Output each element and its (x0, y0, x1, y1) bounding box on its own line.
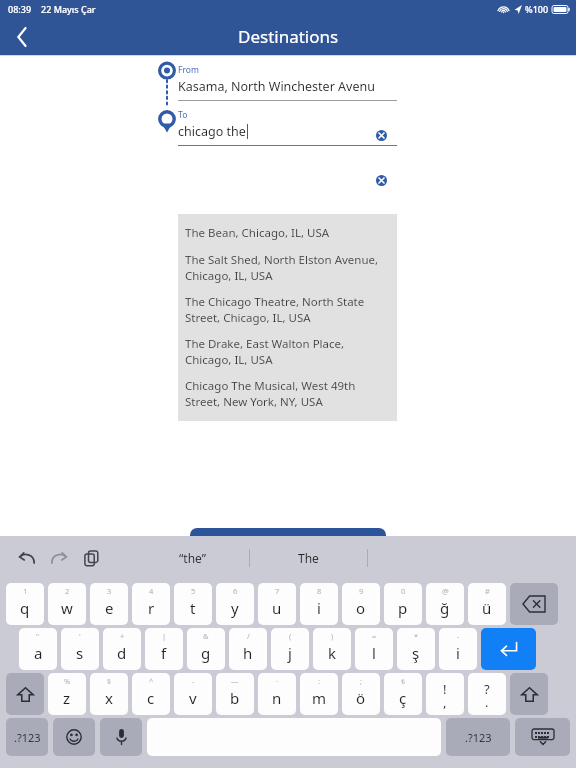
button[interactable]: ) (313, 628, 351, 670)
staticText: chicago the (178, 123, 246, 140)
staticText: 6 (233, 586, 238, 596)
button[interactable]: § (90, 673, 128, 715)
staticText: 3 (107, 586, 112, 596)
button[interactable]: ? (468, 673, 506, 715)
button[interactable]: “the” (137, 536, 249, 580)
button[interactable]: / (229, 628, 267, 670)
button[interactable]: The Bean, Chicago, IL, USA (185, 225, 390, 241)
staticText: i (317, 598, 321, 618)
button[interactable]: Emoji (53, 718, 95, 756)
button[interactable]: 4 (132, 583, 170, 625)
staticText: % (64, 676, 71, 686)
staticText: %100 (525, 3, 549, 15)
button[interactable]: ; (342, 673, 380, 715)
button[interactable]: 7 (258, 583, 296, 625)
button[interactable]: — (216, 673, 254, 715)
button[interactable]: 3 (90, 583, 128, 625)
staticText: p (398, 598, 408, 618)
button[interactable]: 2 (48, 583, 86, 625)
staticText: § (107, 676, 111, 686)
staticText: g (201, 643, 211, 663)
staticText: i (456, 643, 460, 663)
staticText: q (20, 598, 30, 618)
button[interactable]: 0 (384, 583, 422, 625)
staticText: y (231, 598, 239, 618)
staticText: 9 (359, 586, 364, 596)
staticText: - (192, 676, 195, 686)
button[interactable]: The (250, 536, 367, 580)
staticText: 08:39 (8, 3, 32, 15)
staticText: * (414, 631, 419, 641)
button[interactable]: Redo (45, 544, 73, 572)
staticText: @ (442, 586, 449, 596)
button[interactable]: | (145, 628, 183, 670)
staticText: .?123 (465, 730, 492, 745)
button[interactable]: % (48, 673, 86, 715)
staticText: ğ (440, 598, 450, 618)
staticText: - (457, 631, 460, 641)
button[interactable]: + (103, 628, 141, 670)
staticText: # (485, 586, 490, 596)
button[interactable]: 9 (342, 583, 380, 625)
staticText: To (178, 109, 188, 121)
button[interactable]: Clear from field (368, 122, 394, 148)
button[interactable]: Backspace (510, 583, 558, 625)
button[interactable]: @ (426, 583, 464, 625)
button[interactable]: # (468, 583, 506, 625)
button[interactable]: : (300, 673, 338, 715)
button[interactable]: - (439, 628, 477, 670)
button[interactable]: ! (426, 673, 464, 715)
button[interactable]: * (397, 628, 435, 670)
button[interactable]: The Chicago Theatre, North State Street,… (185, 294, 390, 325)
staticText: & (203, 631, 209, 641)
staticText: j (288, 643, 292, 663)
button[interactable]: Next (190, 528, 386, 561)
button[interactable]: Enter (481, 628, 536, 670)
staticText: m (312, 688, 327, 708)
button[interactable]: 8 (300, 583, 338, 625)
button[interactable]: ₺ (384, 673, 422, 715)
staticText: ! (443, 680, 447, 698)
button[interactable]: ^ (132, 673, 170, 715)
button[interactable]: ( (271, 628, 309, 670)
button[interactable]: Paste (77, 544, 105, 572)
button[interactable]: Undo (13, 544, 41, 572)
button[interactable]: The Salt Shed, North Elston Avenue, Chic… (185, 252, 390, 283)
button[interactable]: 1 (6, 583, 44, 625)
staticText: “the” (179, 550, 207, 566)
button[interactable]: Chicago The Musical, West 49th Street, N… (185, 378, 390, 409)
staticText: x (105, 688, 113, 708)
button[interactable]: .?123 (6, 718, 48, 756)
staticText: 0 (401, 586, 406, 596)
staticText: / (247, 631, 250, 641)
button[interactable]: Voice input (100, 718, 142, 756)
button[interactable]: 6 (216, 583, 254, 625)
button[interactable]: & (187, 628, 225, 670)
button[interactable]: Hide keyboard (515, 718, 570, 756)
button[interactable]: " (19, 628, 57, 670)
button[interactable]: - (174, 673, 212, 715)
button[interactable]: Back (0, 18, 44, 55)
staticText: o (356, 598, 366, 618)
staticText: 8 (317, 586, 322, 596)
staticText: ( (289, 631, 292, 641)
button[interactable]: .?123 (446, 718, 510, 756)
staticText: w (61, 598, 73, 618)
button[interactable]: · (258, 673, 296, 715)
button[interactable]: Clear to field (368, 167, 394, 193)
staticText: The Drake, East Walton Place, Chicago, I… (185, 336, 390, 367)
staticText: | (162, 631, 167, 641)
staticText: . (485, 693, 489, 711)
button[interactable]: 5 (174, 583, 212, 625)
staticText: a (34, 643, 43, 663)
button[interactable]: The Drake, East Walton Place, Chicago, I… (185, 336, 390, 367)
button[interactable]: Shift (510, 673, 548, 715)
staticText: ? (484, 680, 490, 698)
button[interactable]: ' (61, 628, 99, 670)
staticText: ^ (149, 676, 154, 686)
button[interactable]: Shift (6, 673, 44, 715)
staticText: ) (331, 631, 334, 641)
staticText: Chicago The Musical, West 49th Street, N… (185, 378, 390, 409)
button[interactable]: = (355, 628, 393, 670)
